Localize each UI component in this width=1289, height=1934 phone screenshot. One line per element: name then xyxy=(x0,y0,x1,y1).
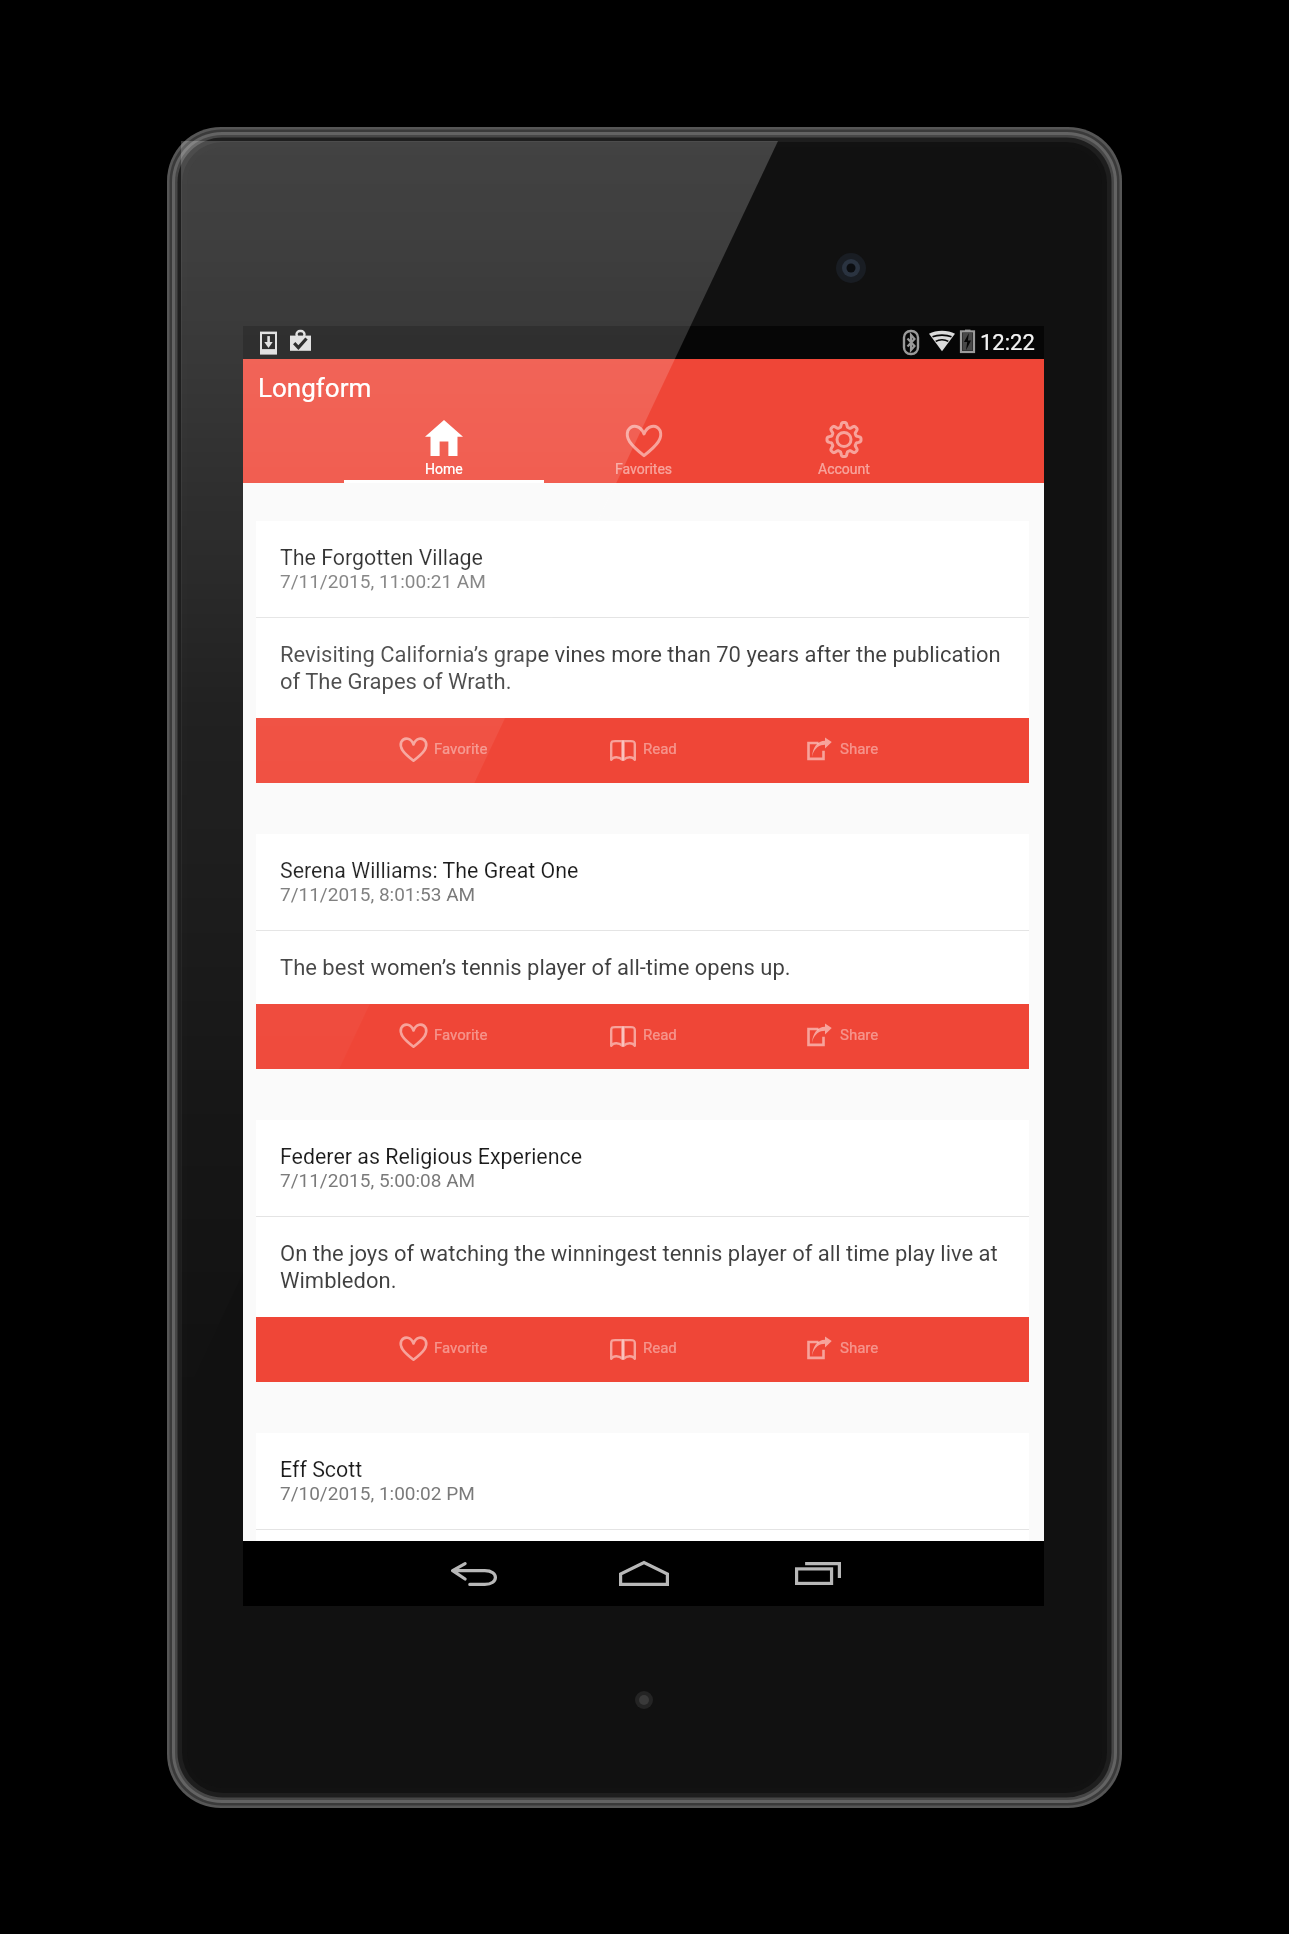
button[interactable]: Share xyxy=(743,718,943,783)
staticText: The best women’s tennis player of all-ti… xyxy=(280,955,791,981)
staticText: Favorite xyxy=(434,1339,488,1357)
button[interactable]: Eff Scott xyxy=(256,1433,1029,1606)
staticText: Revisiting California’s grape vines more… xyxy=(280,642,1005,695)
staticText: 12:22 xyxy=(980,330,1035,356)
button[interactable]: Read xyxy=(543,718,743,783)
button[interactable]: The Forgotten Village xyxy=(256,521,1029,783)
button[interactable]: Account xyxy=(744,409,944,483)
button[interactable]: Home xyxy=(344,409,544,483)
staticText: A profile of the most interesting man in… xyxy=(280,1554,945,1580)
staticText: 7/11/2015, 5:00:08 AM xyxy=(280,1169,476,1191)
staticText: Share xyxy=(840,1339,879,1357)
staticText: Read xyxy=(643,740,677,758)
staticText: Read xyxy=(643,1339,677,1357)
staticText: Serena Williams: The Great One xyxy=(280,858,579,883)
button[interactable]: Favorites xyxy=(544,409,744,483)
button[interactable]: Federer as Religious Experience xyxy=(256,1120,1029,1382)
staticText: 7/10/2015, 1:00:02 PM xyxy=(280,1482,475,1504)
staticText: Longform xyxy=(258,373,372,403)
staticText: Account xyxy=(818,461,870,477)
staticText: Share xyxy=(840,1026,879,1044)
staticText: Share xyxy=(840,740,879,758)
staticText: Home xyxy=(425,461,463,477)
button[interactable]: Home xyxy=(596,1541,692,1606)
button[interactable]: Favorite xyxy=(343,1004,543,1069)
staticText: 7/11/2015, 8:01:53 AM xyxy=(280,883,476,905)
staticText: Federer as Religious Experience xyxy=(280,1144,583,1169)
button[interactable]: Back xyxy=(426,1541,522,1606)
button[interactable]: Share xyxy=(743,1317,943,1382)
button[interactable]: Read xyxy=(543,1004,743,1069)
button[interactable]: Favorite xyxy=(343,718,543,783)
button[interactable]: Share xyxy=(743,1004,943,1069)
button[interactable]: Recent apps xyxy=(770,1541,866,1606)
button[interactable]: Read xyxy=(543,1317,743,1382)
staticText: Favorite xyxy=(434,1026,488,1044)
staticText: The Forgotten Village xyxy=(280,545,483,570)
staticText: Eff Scott xyxy=(280,1457,363,1482)
staticText: Favorite xyxy=(434,740,488,758)
staticText: 7/11/2015, 11:00:21 AM xyxy=(280,570,486,592)
button[interactable]: Favorite xyxy=(343,1317,543,1382)
staticText: Favorites xyxy=(615,461,673,477)
staticText: On the joys of watching the winningest t… xyxy=(280,1241,1005,1294)
button[interactable]: Serena Williams: The Great One xyxy=(256,834,1029,1069)
staticText: Read xyxy=(643,1026,677,1044)
